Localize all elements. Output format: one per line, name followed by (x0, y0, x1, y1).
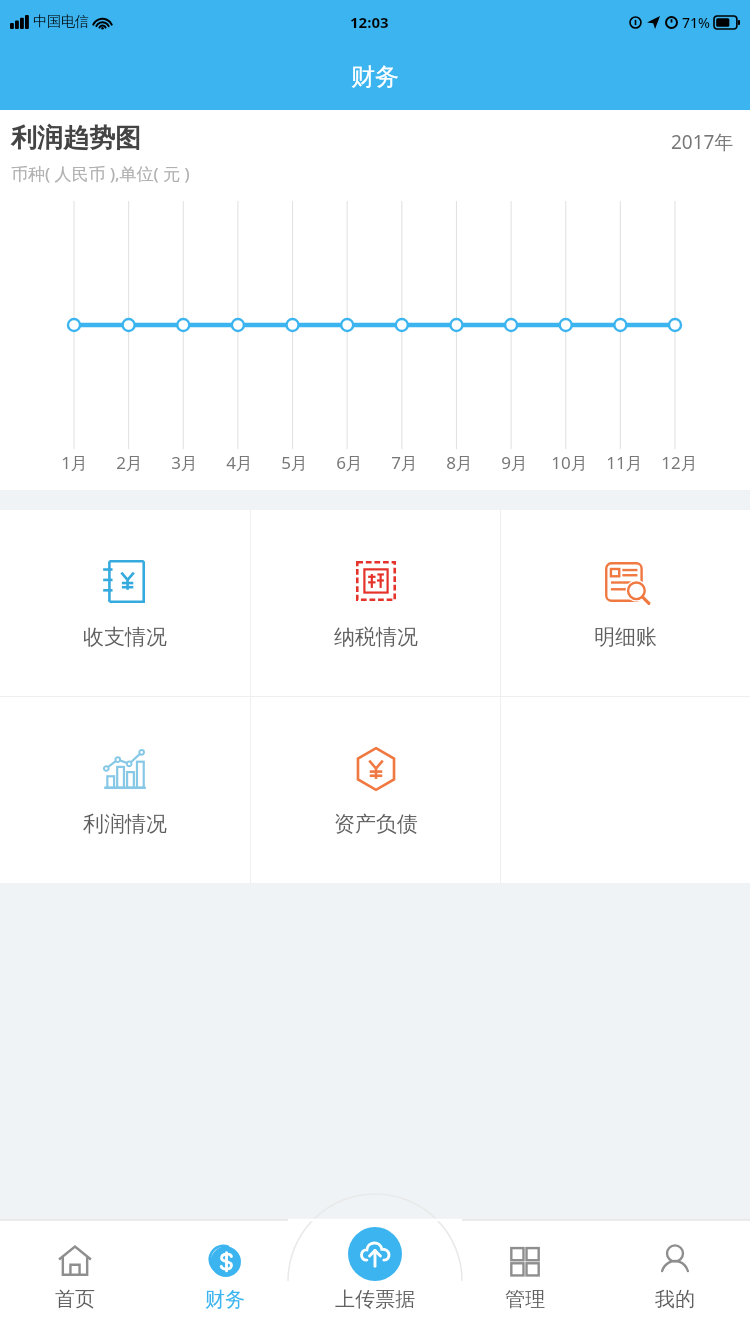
button[interactable]: 明细账 (501, 510, 750, 696)
button[interactable]: 收支情况 (0, 510, 250, 696)
button[interactable]: 管理 (450, 1220, 600, 1333)
staticText: 币种( 人民币 ),单位( 元 ) (11, 162, 190, 185)
button[interactable]: 资产负债 (251, 697, 500, 883)
staticText: 2月 (116, 451, 143, 474)
button[interactable]: 上传票据 (300, 1220, 450, 1333)
button[interactable]: 首页 (0, 1220, 150, 1333)
staticText: 71% (682, 13, 710, 32)
staticText: 10月 (551, 451, 588, 474)
staticText: 我的 (655, 1287, 695, 1312)
staticText: 11月 (606, 451, 643, 474)
staticText: 12:03 (350, 12, 389, 32)
button[interactable]: 我的 (600, 1220, 750, 1333)
staticText: 2017年 (671, 129, 734, 155)
staticText: 资产负债 (334, 811, 418, 837)
staticText: 4月 (226, 451, 253, 474)
staticText: 9月 (501, 451, 528, 474)
staticText: 利润情况 (83, 811, 167, 837)
staticText: 1月 (61, 451, 88, 474)
staticText: 利润趋势图 (11, 122, 141, 155)
staticText: 6月 (336, 451, 363, 474)
button[interactable]: 利润情况 (0, 697, 250, 883)
staticText: 7月 (391, 451, 418, 474)
staticText: 首页 (55, 1287, 95, 1312)
staticText: 5月 (281, 451, 308, 474)
staticText: 8月 (446, 451, 473, 474)
button[interactable]: 纳税情况 (251, 510, 500, 696)
staticText: 明细账 (594, 624, 657, 650)
button[interactable]: 财务 (150, 1220, 300, 1333)
staticText: 纳税情况 (334, 624, 418, 650)
staticText: 12月 (661, 451, 698, 474)
staticText: 财务 (205, 1287, 245, 1312)
staticText: 收支情况 (83, 624, 167, 650)
staticText: 管理 (505, 1287, 545, 1312)
staticText: 财务 (351, 62, 399, 92)
staticText: 中国电信 (33, 13, 89, 31)
staticText: 3月 (171, 451, 198, 474)
staticText: 上传票据 (335, 1287, 415, 1312)
